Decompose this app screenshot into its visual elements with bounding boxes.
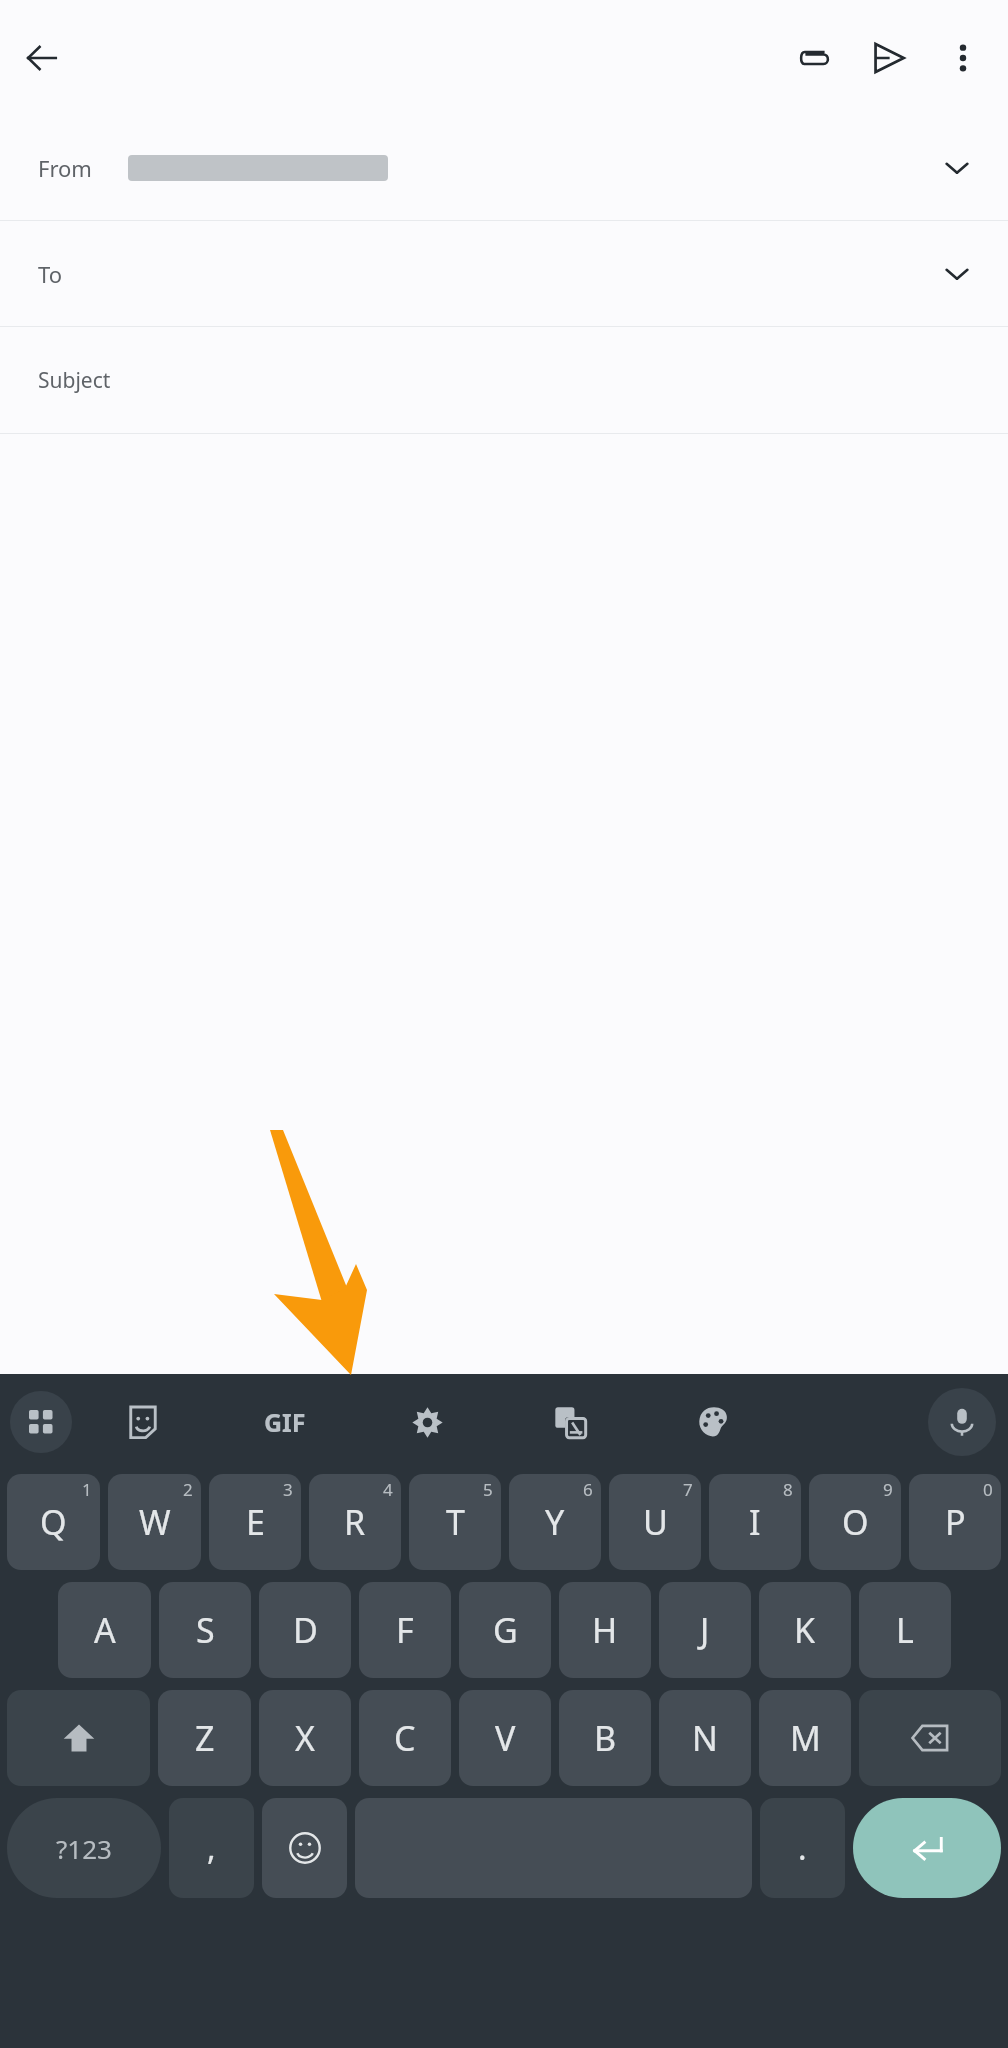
staticText: N [692,1715,718,1761]
button[interactable]: W [108,1474,201,1570]
staticText: 7 [683,1478,693,1501]
staticText: X [295,1715,315,1761]
button[interactable]: , [169,1798,254,1898]
staticText: 5 [483,1478,493,1501]
button[interactable]: . [760,1798,845,1898]
staticText: F [396,1607,414,1653]
staticText: 3 [283,1478,293,1501]
button[interactable]: Attach file [778,21,852,95]
staticText: R [344,1499,366,1545]
staticText: 9 [883,1478,893,1501]
staticText: 4 [383,1478,393,1501]
staticText: W [139,1499,171,1545]
button[interactable]: P [909,1474,1001,1570]
staticText: P [945,1499,966,1545]
staticText: ?123 [56,1831,112,1866]
button[interactable]: More options [926,21,1000,95]
button[interactable]: Translate [499,1374,642,1470]
staticText: G [493,1607,518,1653]
button[interactable]: Enter [853,1798,1001,1898]
staticText: J [700,1607,710,1653]
staticText: H [592,1607,618,1653]
button[interactable]: To [0,221,1008,326]
button[interactable]: Expand From [920,131,994,205]
button[interactable]: From [0,116,1008,220]
button[interactable]: T [409,1474,501,1570]
button[interactable]: Toolbar menu [10,1391,72,1453]
button[interactable]: Z [158,1690,251,1786]
button[interactable]: U [609,1474,701,1570]
staticText: , [207,1826,216,1870]
button[interactable]: I [709,1474,801,1570]
button[interactable]: C [359,1690,451,1786]
staticText: T [446,1499,465,1545]
button[interactable]: D [259,1582,351,1678]
button[interactable]: F [359,1582,451,1678]
staticText: M [790,1715,821,1761]
button[interactable]: GIF [214,1374,356,1470]
staticText: O [842,1499,869,1545]
staticText: Subject [38,366,111,395]
button[interactable]: Voice input [928,1388,996,1456]
button[interactable]: M [759,1690,851,1786]
button[interactable]: A [58,1582,151,1678]
staticText: 1 [82,1478,92,1501]
staticText: Q [40,1499,67,1545]
button[interactable]: H [559,1582,651,1678]
button[interactable]: Y [509,1474,601,1570]
button[interactable]: Subject [0,327,1008,433]
staticText: I [749,1499,761,1545]
button[interactable]: S [159,1582,251,1678]
staticText: From [38,153,92,183]
button[interactable]: Theme [642,1374,785,1470]
staticText: V [495,1715,516,1761]
button[interactable]: Stickers [72,1374,214,1470]
button[interactable]: L [859,1582,951,1678]
staticText: C [394,1715,416,1761]
button[interactable]: Emoji [262,1798,347,1898]
staticText: To [38,259,63,289]
button[interactable]: N [659,1690,751,1786]
staticText: Z [195,1715,215,1761]
button[interactable]: Q [7,1474,100,1570]
button[interactable]: ?123 [7,1798,161,1898]
staticText: S [196,1607,215,1653]
button[interactable]: Send [852,21,926,95]
staticText: Y [545,1499,565,1545]
button[interactable]: B [559,1690,651,1786]
button[interactable]: Settings [356,1374,499,1470]
button[interactable]: Shift [7,1690,150,1786]
staticText: E [246,1499,265,1545]
staticText: K [794,1607,816,1653]
button[interactable]: K [759,1582,851,1678]
staticText: 2 [183,1478,193,1501]
button[interactable]: Back [10,26,74,90]
button[interactable]: Backspace [859,1690,1001,1786]
staticText: GIF [264,1405,306,1439]
button[interactable]: X [259,1690,351,1786]
button[interactable]: J [659,1582,751,1678]
button[interactable]: V [459,1690,551,1786]
staticText: 8 [783,1478,793,1501]
button[interactable]: E [209,1474,301,1570]
staticText: U [643,1499,668,1545]
staticText: B [594,1715,617,1761]
staticText: 6 [583,1478,593,1501]
staticText: D [293,1607,318,1653]
staticText: 0 [983,1478,993,1501]
button[interactable]: R [309,1474,401,1570]
staticText: . [798,1826,807,1870]
button[interactable]: G [459,1582,551,1678]
staticText: A [94,1607,116,1653]
button[interactable]: Expand To [920,237,994,311]
button[interactable]: O [809,1474,901,1570]
staticText: L [896,1607,914,1653]
